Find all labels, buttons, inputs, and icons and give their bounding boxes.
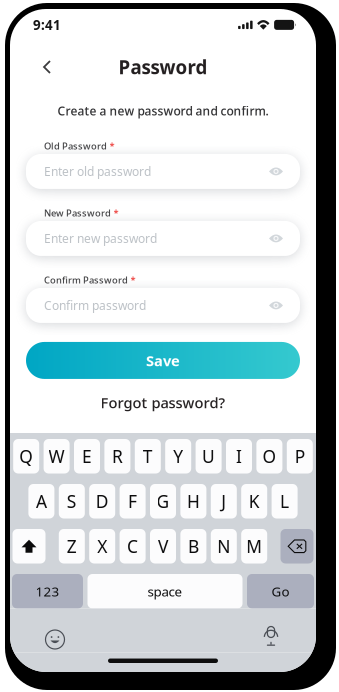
- staticText: O: [262, 445, 276, 468]
- button[interactable]: Show password: [262, 291, 290, 319]
- button[interactable]: Z: [59, 529, 85, 563]
- staticText: space: [147, 582, 182, 600]
- button[interactable]: N: [211, 529, 237, 563]
- staticText: P: [295, 445, 305, 468]
- button[interactable]: I: [226, 439, 252, 473]
- staticText: 123: [35, 582, 59, 600]
- button[interactable]: 123: [12, 574, 83, 608]
- button[interactable]: Y: [165, 439, 191, 473]
- button[interactable]: space: [87, 574, 242, 608]
- staticText: Confirm Password: [44, 274, 128, 286]
- staticText: Save: [146, 351, 180, 370]
- staticText: E: [82, 445, 92, 468]
- staticText: W: [49, 445, 65, 468]
- staticText: N: [217, 535, 230, 558]
- staticText: I: [236, 445, 242, 468]
- staticText: Create a new password and confirm.: [57, 103, 268, 119]
- staticText: Q: [19, 445, 33, 468]
- button[interactable]: J: [211, 484, 237, 518]
- staticText: Z: [67, 535, 77, 558]
- button[interactable]: Dictation: [256, 626, 286, 652]
- button[interactable]: O: [256, 439, 282, 473]
- staticText: Enter new password: [44, 230, 157, 246]
- button[interactable]: Shift: [12, 529, 45, 563]
- staticText: G: [156, 490, 169, 513]
- button[interactable]: G: [150, 484, 176, 518]
- button[interactable]: A: [28, 484, 54, 518]
- staticText: B: [188, 535, 199, 558]
- button[interactable]: P: [287, 439, 313, 473]
- button[interactable]: T: [135, 439, 161, 473]
- button[interactable]: L: [272, 484, 298, 518]
- button[interactable]: B: [180, 529, 206, 563]
- button[interactable]: K: [241, 484, 267, 518]
- button[interactable]: Q: [13, 439, 39, 473]
- button[interactable]: M: [241, 529, 267, 563]
- staticText: *: [130, 274, 135, 286]
- button[interactable]: W: [44, 439, 70, 473]
- button[interactable]: E: [74, 439, 100, 473]
- button[interactable]: F: [120, 484, 146, 518]
- staticText: S: [67, 490, 77, 513]
- staticText: K: [249, 490, 260, 513]
- staticText: C: [127, 535, 138, 558]
- button[interactable]: V: [150, 529, 176, 563]
- button[interactable]: R: [104, 439, 130, 473]
- staticText: L: [280, 490, 289, 513]
- staticText: Enter old password: [44, 163, 151, 179]
- button[interactable]: Show password: [262, 157, 290, 185]
- staticText: H: [187, 490, 200, 513]
- staticText: A: [36, 490, 47, 513]
- staticText: Password: [118, 55, 207, 79]
- staticText: M: [246, 535, 262, 558]
- staticText: R: [112, 445, 123, 468]
- staticText: T: [143, 445, 153, 468]
- button[interactable]: C: [120, 529, 146, 563]
- staticText: F: [128, 490, 137, 513]
- button[interactable]: D: [89, 484, 115, 518]
- staticText: Y: [173, 445, 183, 468]
- staticText: Confirm password: [44, 297, 146, 313]
- staticText: New Password: [44, 207, 111, 219]
- staticText: X: [97, 535, 107, 558]
- staticText: Go: [271, 582, 289, 600]
- staticText: J: [221, 490, 226, 513]
- button[interactable]: Go: [247, 574, 314, 608]
- button[interactable]: Show password: [262, 224, 290, 252]
- button[interactable]: Emoji keyboard: [40, 626, 70, 652]
- button[interactable]: Save: [26, 342, 300, 379]
- staticText: Old Password: [44, 140, 107, 152]
- staticText: *: [109, 140, 114, 152]
- staticText: D: [96, 490, 109, 513]
- button[interactable]: Delete: [280, 529, 313, 563]
- button[interactable]: Back: [31, 51, 63, 83]
- button[interactable]: S: [59, 484, 85, 518]
- button[interactable]: X: [89, 529, 115, 563]
- staticText: *: [113, 207, 118, 219]
- button[interactable]: H: [180, 484, 206, 518]
- staticText: 9:41: [33, 16, 61, 34]
- staticText: U: [202, 445, 215, 468]
- staticText: V: [158, 535, 168, 558]
- button[interactable]: U: [196, 439, 222, 473]
- button[interactable]: Forgot password?: [92, 388, 233, 417]
- staticText: Forgot password?: [100, 393, 225, 412]
